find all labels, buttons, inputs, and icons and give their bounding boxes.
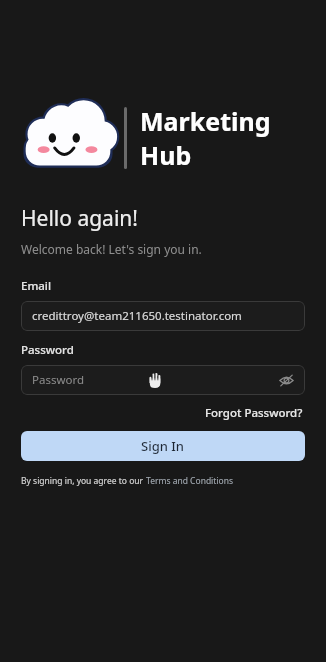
staticText: Email xyxy=(21,278,52,294)
staticText: Welcome back! Let's sign you in. xyxy=(21,241,202,257)
button[interactable]: credittroy@team211650.testinator.com xyxy=(21,301,305,331)
button[interactable]: Forgot Password? xyxy=(203,403,305,423)
button[interactable]: Password xyxy=(21,365,305,395)
button[interactable]: Show password xyxy=(275,369,297,391)
staticText: By signing in, you agree to our xyxy=(21,475,146,487)
staticText: Hello again! xyxy=(21,204,138,233)
staticText: Password xyxy=(32,372,85,388)
staticText: Marketing xyxy=(140,104,271,138)
button[interactable]: Sign In xyxy=(21,431,305,461)
button[interactable]: Terms and Conditions xyxy=(146,475,234,487)
staticText: Sign In xyxy=(141,437,185,455)
staticText: Forgot Password? xyxy=(205,405,303,421)
staticText: credittroy@team211650.testinator.com xyxy=(32,308,242,324)
staticText: Password xyxy=(21,342,74,358)
staticText: Hub xyxy=(140,138,192,172)
staticText: Terms and Conditions xyxy=(146,475,234,487)
